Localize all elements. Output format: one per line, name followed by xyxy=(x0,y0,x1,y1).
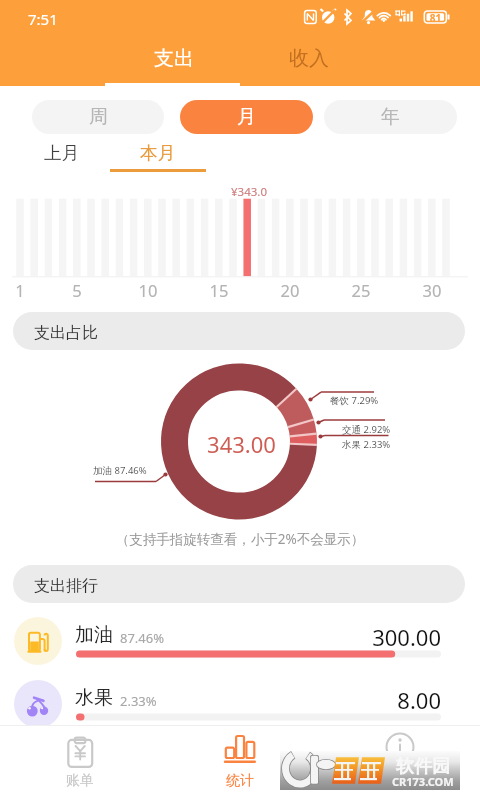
staticText: 10 xyxy=(128,279,168,301)
staticText: （支持手指旋转查看，小于2%不会显示） xyxy=(0,530,480,548)
staticText: 5 xyxy=(57,279,97,301)
staticText: 30 xyxy=(412,279,452,301)
staticText: 支出 xyxy=(154,46,194,71)
button[interactable]: 支出 xyxy=(106,32,241,84)
staticText: 账单 xyxy=(0,772,160,790)
staticText: 本月 xyxy=(140,142,175,164)
button[interactable]: 水果 xyxy=(0,680,480,736)
staticText: 25 xyxy=(341,279,381,301)
staticText: 水果 2.33% xyxy=(342,438,391,451)
staticText: 餐饮 7.29% xyxy=(330,394,379,407)
staticText: 81 xyxy=(427,11,444,25)
staticText: 我的 xyxy=(320,772,480,790)
button[interactable]: 周 xyxy=(32,100,164,134)
staticText: 软件园 xyxy=(396,755,450,778)
staticText: 上月 xyxy=(44,142,79,164)
staticText: 343.00 xyxy=(191,429,292,459)
staticText: 2.33% xyxy=(120,692,157,710)
staticText: 周 xyxy=(89,105,108,129)
button[interactable]: 我的 xyxy=(320,725,480,800)
button[interactable]: 本月 xyxy=(117,139,197,167)
staticText: 15 xyxy=(199,279,239,301)
staticText: CR173.COM xyxy=(392,774,454,789)
button[interactable]: 账单 xyxy=(0,725,160,800)
button[interactable]: 上月 xyxy=(21,139,101,167)
staticText: 收入 xyxy=(289,46,329,71)
staticText: ¥343.0 xyxy=(219,184,279,200)
button[interactable]: 年 xyxy=(324,100,457,134)
staticText: 87.46% xyxy=(120,629,165,647)
staticText: 20 xyxy=(270,279,310,301)
staticText: 水果 xyxy=(75,686,113,710)
staticText: 年 xyxy=(381,105,400,129)
staticText: 月 xyxy=(237,105,256,129)
staticText: 交通 2.92% xyxy=(342,423,391,436)
staticText: 支出占比 xyxy=(34,323,98,343)
button[interactable]: 收入 xyxy=(241,32,376,84)
button[interactable]: 月 xyxy=(180,100,313,134)
staticText: 支出排行 xyxy=(34,576,98,596)
button[interactable]: 统计 xyxy=(160,725,320,800)
button[interactable]: 支出占比 xyxy=(13,312,465,350)
staticText: 300.00 xyxy=(340,622,441,652)
staticText: 统计 xyxy=(160,772,320,790)
staticText: 7:51 xyxy=(28,9,58,29)
staticText: 8.00 xyxy=(340,685,441,715)
staticText: 1 xyxy=(0,279,40,301)
staticText: 加油 87.46% xyxy=(93,464,147,477)
button[interactable]: 支出排行 xyxy=(13,565,465,603)
staticText: 加油 xyxy=(75,623,113,647)
button[interactable]: 加油 xyxy=(0,617,480,673)
